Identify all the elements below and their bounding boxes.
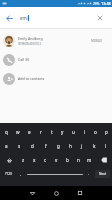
button[interactable]: Space [25,167,85,181]
staticText: e [28,129,31,135]
button[interactable]: k [88,139,100,153]
button[interactable]: b [62,153,73,167]
button[interactable]: e [24,125,35,139]
staticText: v [55,157,58,163]
button[interactable]: u [68,125,79,139]
staticText: 0098005420010 2 [18,42,42,46]
staticText: n [77,157,80,163]
button[interactable]: j [76,139,88,153]
staticText: f [45,143,47,149]
button[interactable]: Backspace [95,153,112,167]
staticText: k [93,143,96,149]
staticText: , [20,171,22,177]
button[interactable]: . [85,167,93,181]
staticText: c [44,157,47,163]
staticText: h [69,143,72,149]
button[interactable]: ?123 [0,167,16,181]
staticText: y [61,129,64,135]
button[interactable]: s [13,139,26,153]
button[interactable]: g [52,139,64,153]
staticText: 29% [93,2,100,6]
staticText: g [57,143,60,149]
staticText: z [22,157,25,163]
button[interactable]: o [90,125,101,139]
staticText: o [94,129,97,135]
button[interactable]: i [79,125,90,139]
button[interactable]: r [35,125,46,139]
staticText: w [16,129,20,135]
staticText: . [88,171,90,177]
button[interactable]: Back [25,186,39,200]
button[interactable]: c [40,153,51,167]
button[interactable]: x [29,153,40,167]
staticText: l [105,143,107,149]
button[interactable]: Back [0,9,18,27]
button[interactable]: h [64,139,76,153]
button[interactable]: Clear search [91,9,109,27]
staticText: s [18,143,21,149]
button[interactable]: Shift [0,153,18,167]
staticText: 13:48 [101,1,111,6]
staticText: m [87,157,92,163]
button[interactable]: Home [49,186,63,200]
staticText: Emily Andberg [18,36,43,41]
staticText: b [66,157,69,163]
button[interactable]: y [57,125,68,139]
button[interactable]: z [18,153,29,167]
button[interactable]: v [51,153,62,167]
button[interactable]: Emily Andberg [0,32,112,50]
staticText: MOBILE [91,39,103,43]
button[interactable]: n [73,153,84,167]
button[interactable]: , [16,167,25,181]
button[interactable]: a [0,139,13,153]
button[interactable]: Add to contacts [0,69,112,88]
staticText: i [84,129,86,135]
staticText: a [5,143,8,149]
button[interactable]: Call 36 [0,50,112,69]
button[interactable]: t [46,125,57,139]
button[interactable]: d [26,139,39,153]
staticText: t [51,129,53,135]
staticText: ?123 [5,172,12,176]
staticText: Call 36 [18,57,30,62]
staticText: x [33,157,36,163]
button[interactable]: w [12,125,24,139]
staticText: q [5,129,8,135]
button[interactable]: Next [95,170,110,178]
button[interactable]: l [100,139,112,153]
button[interactable]: f [39,139,52,153]
staticText: u [72,129,75,135]
staticText: p [105,129,108,135]
button[interactable]: p [101,125,112,139]
staticText: Next [99,172,106,176]
staticText: j [81,143,83,149]
staticText: Add to contacts [18,76,45,81]
button[interactable]: Recent apps [73,186,87,200]
button[interactable]: m [84,153,95,167]
staticText: emi [20,15,28,21]
staticText: d [31,143,34,149]
button[interactable]: q [0,125,12,139]
staticText: r [40,129,42,135]
